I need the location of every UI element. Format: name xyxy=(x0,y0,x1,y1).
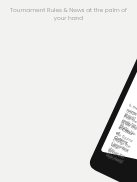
staticText: Tournament Rules & News at the palm of y… xyxy=(0,6,137,22)
